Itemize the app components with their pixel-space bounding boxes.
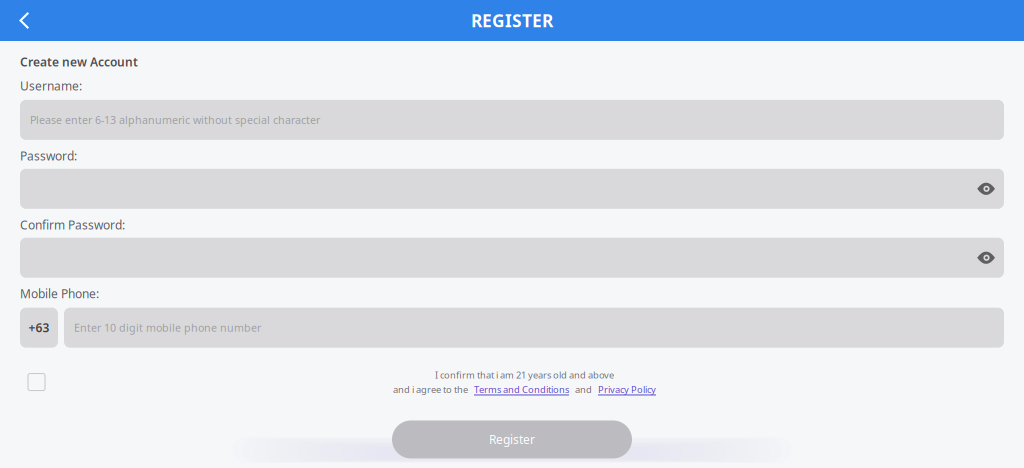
staticText: Terms and Conditions — [474, 383, 569, 395]
staticText: Enter 10 digit mobile phone number — [74, 321, 261, 335]
staticText: Confirm Password: — [20, 217, 125, 233]
staticText: and — [575, 383, 592, 395]
staticText: Password: — [20, 148, 77, 164]
staticText: Privacy Policy — [598, 383, 656, 395]
button[interactable]: Privacy Policy — [598, 383, 656, 395]
staticText: Please enter 6-13 alphanumeric without s… — [30, 113, 320, 127]
button[interactable]: Register — [392, 420, 632, 458]
button[interactable]: I confirm I am 21 years old and above — [20, 374, 45, 391]
staticText: +63 — [28, 320, 49, 336]
button[interactable]: Show password — [971, 177, 996, 201]
button[interactable]: Terms and Conditions — [474, 383, 569, 395]
button[interactable]: Show password — [971, 246, 996, 270]
staticText: Username: — [20, 78, 82, 94]
staticText: Mobile Phone: — [20, 286, 99, 302]
staticText: I confirm that i am 21 years old and abo… — [435, 369, 614, 381]
staticText: and i agree to the — [393, 383, 468, 395]
staticText: Register — [489, 431, 535, 447]
staticText: Create new Account — [20, 54, 138, 70]
button[interactable]: Back — [0, 3, 42, 37]
staticText: REGISTER — [471, 9, 553, 32]
